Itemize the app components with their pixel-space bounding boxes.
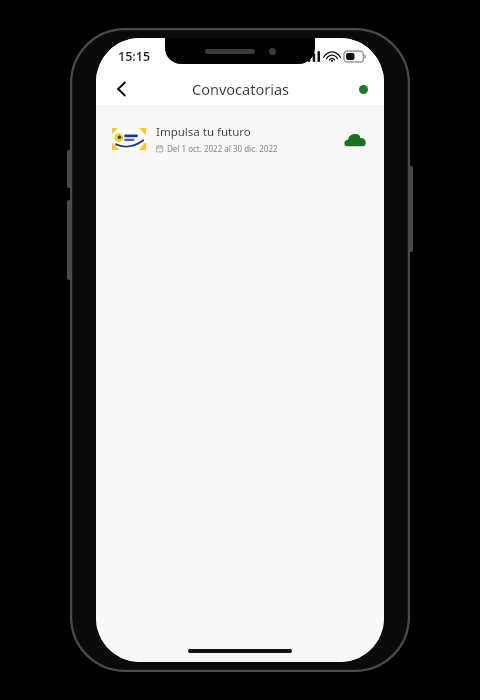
button[interactable]: Back xyxy=(102,72,142,106)
staticText: 15:15 xyxy=(118,48,151,65)
staticText: Impulsa tu futuro xyxy=(156,124,251,140)
button[interactable]: Download xyxy=(340,124,370,154)
staticText: Del 1 oct. 2022 al 30 dic. 2022 xyxy=(167,143,278,154)
button[interactable]: Connection status xyxy=(350,76,376,102)
button[interactable]: Impulsa tu futuro xyxy=(96,119,384,159)
staticText: Convocatorias xyxy=(192,79,289,99)
